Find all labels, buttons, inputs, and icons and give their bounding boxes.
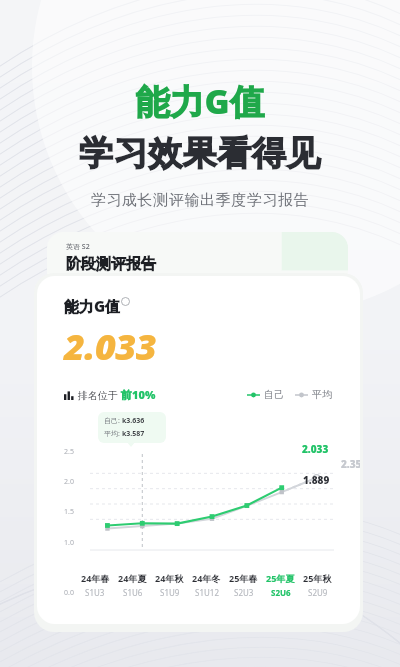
- staticText: 24年春: [81, 572, 110, 584]
- staticText: 排名位于: [78, 388, 121, 402]
- staticText: 24年秋: [155, 572, 184, 584]
- button[interactable]: 平均: [295, 388, 332, 401]
- staticText: 能力G值: [0, 78, 400, 124]
- staticText: S2U9: [308, 587, 328, 598]
- button[interactable]: 25年春: [225, 572, 262, 598]
- staticText: 25年春: [229, 572, 258, 584]
- staticText: S1U6: [123, 587, 143, 598]
- staticText: 2.0: [64, 477, 74, 487]
- staticText: S2U6: [271, 587, 291, 598]
- staticText: 英语 S2: [66, 242, 90, 252]
- staticText: 学习效果看得见: [0, 132, 400, 175]
- staticText: 2.033: [302, 442, 329, 456]
- staticText: 平均:: [104, 429, 122, 439]
- staticText: 自己:: [104, 416, 122, 426]
- staticText: 0.0: [64, 588, 74, 598]
- staticText: 能力G值: [64, 296, 121, 316]
- staticText: 1.5: [64, 507, 74, 517]
- button[interactable]: 24年春: [76, 572, 114, 598]
- staticText: 自己: [264, 388, 284, 401]
- button[interactable]: 英语 S2: [47, 232, 348, 302]
- button[interactable]: 24年冬: [188, 572, 225, 598]
- button[interactable]: 能力G值: [34, 273, 363, 632]
- staticText: 2.356: [341, 457, 360, 471]
- staticText: 24年夏: [118, 572, 147, 584]
- button[interactable]: 25年夏: [262, 572, 299, 598]
- staticText: 1.889: [303, 473, 330, 487]
- staticText: S1U3: [85, 587, 105, 598]
- button[interactable]: 自己: [247, 388, 284, 401]
- staticText: 1.0: [64, 538, 74, 548]
- staticText: S1U12: [195, 587, 219, 598]
- staticText: 25年夏: [266, 572, 295, 584]
- button[interactable]: 24年秋: [151, 572, 188, 598]
- staticText: k3.587: [122, 429, 145, 439]
- button[interactable]: 自己:: [98, 412, 166, 443]
- staticText: 25年秋: [303, 572, 332, 584]
- staticText: 平均: [312, 388, 332, 401]
- staticText: 24年冬: [192, 572, 221, 584]
- staticText: 阶段测评报告: [66, 255, 156, 274]
- staticText: k3.636: [122, 416, 145, 426]
- staticText: 2.5: [64, 447, 74, 457]
- staticText: S1U9: [160, 587, 180, 598]
- staticText: S2U3: [234, 587, 254, 598]
- staticText: 学习成长测评输出季度学习报告: [0, 191, 400, 210]
- staticText: 2.033: [64, 322, 157, 371]
- button[interactable]: 25年秋: [299, 572, 336, 598]
- staticText: 前10%: [121, 387, 156, 402]
- button[interactable]: 24年夏: [114, 572, 151, 598]
